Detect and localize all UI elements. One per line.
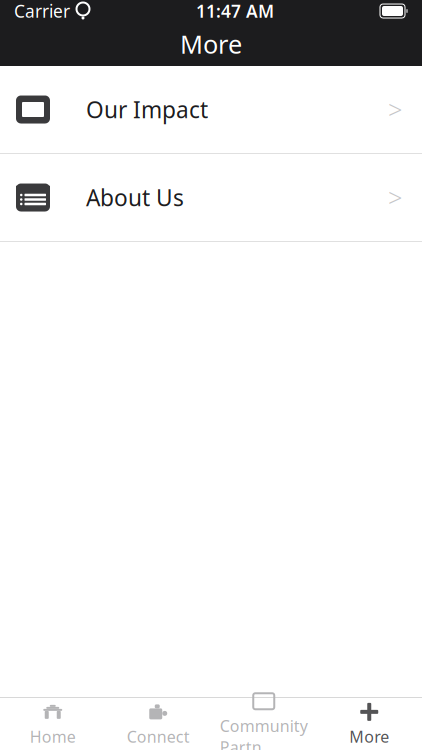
button[interactable]: Our Impact xyxy=(0,66,422,153)
button[interactable]: Connect xyxy=(105,698,211,750)
staticText: Carrier xyxy=(14,0,70,22)
staticText: Home xyxy=(30,726,76,747)
staticText: About Us xyxy=(86,182,184,212)
button[interactable]: Home xyxy=(0,698,105,750)
staticText: More xyxy=(349,726,389,747)
staticText: Community Partn… xyxy=(220,715,308,750)
staticText: Our Impact xyxy=(86,94,208,124)
button[interactable]: Community Partn… xyxy=(211,698,316,750)
staticText: 11:47 AM xyxy=(196,0,274,22)
staticText: > xyxy=(388,181,402,214)
button[interactable]: About Us xyxy=(0,154,422,241)
staticText: More xyxy=(180,27,242,61)
staticText: Connect xyxy=(127,726,190,747)
button[interactable]: More xyxy=(316,698,422,750)
staticText: > xyxy=(388,93,402,126)
